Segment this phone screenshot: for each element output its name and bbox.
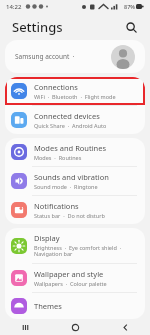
staticText: Sounds and vibration <box>34 172 109 182</box>
staticText: Status bar · Do not disturb <box>34 212 105 219</box>
staticText: Sound mode · Ringtone <box>34 183 98 190</box>
staticText: Connected devices <box>34 111 100 121</box>
button[interactable]: Wallpaper and style <box>5 264 145 292</box>
button[interactable]: Notifications <box>5 196 145 224</box>
staticText: Settings <box>12 18 63 36</box>
button[interactable]: Modes and Routines <box>5 138 145 166</box>
button[interactable]: Connected devices <box>5 106 145 134</box>
staticText: Quick Share · Android Auto <box>34 122 107 129</box>
staticText: Modes · Routines <box>34 154 82 161</box>
staticText: Brightness · Eye comfort shield · Naviga… <box>34 244 137 258</box>
staticText: Themes <box>34 301 62 311</box>
staticText: 87% <box>124 3 135 10</box>
staticText: Modes and Routines <box>34 143 107 153</box>
button[interactable]: Home <box>50 319 100 335</box>
button[interactable]: Recent apps <box>0 319 50 335</box>
button[interactable]: Themes <box>5 293 145 319</box>
staticText: WiFi · Bluetooth · Flight mode <box>34 93 116 100</box>
staticText: Wallpaper and style <box>34 269 104 279</box>
staticText: Samsung account · <box>15 52 75 61</box>
staticText: Notifications <box>34 201 79 211</box>
button[interactable]: Connections <box>5 77 145 105</box>
button[interactable]: Back <box>100 319 150 335</box>
button[interactable]: Samsung account · <box>5 40 145 73</box>
button[interactable]: Search <box>120 16 142 38</box>
button[interactable]: Display <box>5 228 145 263</box>
staticText: Connections <box>34 82 78 92</box>
button[interactable]: Sounds and vibration <box>5 167 145 195</box>
staticText: Display <box>34 233 60 243</box>
staticText: 14:22 <box>6 3 22 11</box>
staticText: Wallpapers · Colour palette <box>34 280 107 287</box>
